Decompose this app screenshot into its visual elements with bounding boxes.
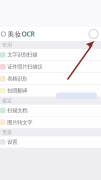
staticText: 扫描文档 — [7, 107, 27, 114]
button[interactable]: Add — [89, 29, 98, 38]
button[interactable]: Highlight — [56, 92, 97, 99]
button[interactable]: 表格识别 — [0, 73, 101, 85]
staticText: 更多 — [2, 129, 12, 135]
staticText: 最近 — [2, 97, 12, 104]
button[interactable]: 设置 — [0, 136, 101, 148]
button[interactable]: 文字识别扫描 — [0, 49, 101, 61]
staticText: 设置 — [7, 139, 17, 145]
staticText: 文字识别扫描 — [7, 51, 37, 58]
button[interactable]: 图片转文字 — [0, 117, 101, 128]
button[interactable]: 扫描文档 — [0, 105, 101, 116]
staticText: 证件照片扫描仪 — [7, 63, 42, 70]
staticText: 常用 — [2, 42, 12, 48]
button[interactable]: 证件照片扫描仪 — [0, 61, 101, 73]
staticText: 图片转文字 — [7, 119, 32, 126]
staticText: 拍照翻译 — [7, 87, 27, 94]
staticText: 美妆OCR — [8, 30, 35, 38]
button[interactable]: Menu — [1, 32, 6, 36]
button[interactable]: 拍照翻译 — [0, 85, 101, 97]
staticText: 表格识别 — [7, 75, 27, 82]
